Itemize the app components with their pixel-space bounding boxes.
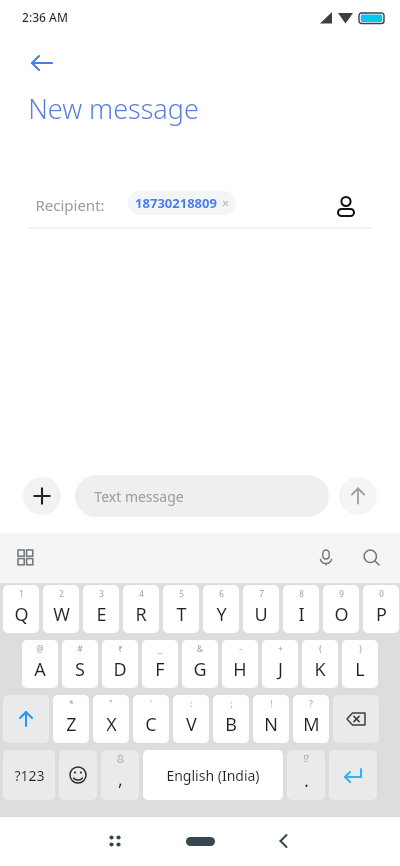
button[interactable]: 1 xyxy=(3,585,39,633)
button[interactable]: Search xyxy=(354,540,390,576)
button[interactable]: ?123 xyxy=(3,750,55,800)
button[interactable]: Backspace xyxy=(333,695,379,743)
staticText: 2:36 AM xyxy=(22,9,68,25)
staticText: 1 xyxy=(19,588,24,599)
button[interactable]: " xyxy=(93,695,129,743)
button[interactable]: : xyxy=(173,695,209,743)
button[interactable]: Send xyxy=(339,477,377,515)
staticText: ; xyxy=(230,698,233,709)
button[interactable]: Menu xyxy=(8,540,44,576)
staticText: E xyxy=(96,602,107,627)
staticText: : xyxy=(190,698,193,709)
button[interactable]: & xyxy=(182,640,218,688)
staticText: 2 xyxy=(59,588,64,599)
staticText: New message xyxy=(28,90,199,127)
staticText: 4 xyxy=(139,588,144,599)
button[interactable]: Home xyxy=(181,822,219,860)
staticText: ? xyxy=(309,698,313,709)
staticText: & xyxy=(197,643,203,654)
button[interactable]: * xyxy=(53,695,89,743)
button[interactable]: ' xyxy=(133,695,169,743)
staticText: * xyxy=(69,698,74,709)
button[interactable]: Text message xyxy=(75,475,329,517)
button[interactable]: 18730218809 xyxy=(128,191,236,215)
button[interactable]: ₹ xyxy=(102,640,138,688)
staticText: 5 xyxy=(179,588,184,599)
button[interactable]: ) xyxy=(342,640,378,688)
button[interactable]: 4 xyxy=(123,585,159,633)
button[interactable]: Back xyxy=(266,822,304,860)
button[interactable]: Shift xyxy=(3,695,49,743)
staticText: 18730218809 xyxy=(135,194,217,212)
button[interactable]: ! xyxy=(253,695,289,743)
button[interactable]: _ xyxy=(142,640,178,688)
staticText: L xyxy=(355,657,365,682)
staticText: # xyxy=(77,643,83,654)
staticText: 3 xyxy=(99,588,104,599)
button[interactable]: Recents xyxy=(96,822,134,860)
staticText: F xyxy=(155,657,165,682)
staticText: Text message xyxy=(94,487,184,506)
staticText: J xyxy=(278,657,283,682)
button[interactable]: 0 xyxy=(363,585,399,633)
button[interactable]: ( xyxy=(302,640,338,688)
button[interactable]: , xyxy=(101,750,139,800)
button[interactable]: - xyxy=(222,640,258,688)
staticText: N xyxy=(264,712,278,737)
staticText: ! xyxy=(270,698,273,709)
staticText: , xyxy=(118,767,123,792)
button[interactable]: 9 xyxy=(323,585,359,633)
staticText: M xyxy=(303,712,320,737)
staticText: Y xyxy=(216,602,227,627)
staticText: P xyxy=(376,602,387,627)
staticText: 8 xyxy=(299,588,304,599)
staticText: C xyxy=(145,712,157,737)
staticText: ?123 xyxy=(14,766,45,785)
staticText: !? xyxy=(303,753,309,764)
staticText: W xyxy=(53,602,70,627)
button[interactable]: 5 xyxy=(163,585,199,633)
button[interactable]: 6 xyxy=(203,585,239,633)
button[interactable]: English (India) xyxy=(143,750,283,800)
staticText: × xyxy=(222,195,229,211)
button[interactable]: 7 xyxy=(243,585,279,633)
staticText: _ xyxy=(158,643,162,654)
staticText: Recipient: xyxy=(35,195,105,215)
button[interactable]: @ xyxy=(22,640,58,688)
staticText: @ xyxy=(36,643,44,654)
button[interactable]: Emoji xyxy=(59,750,97,800)
button[interactable]: # xyxy=(62,640,98,688)
staticText: D xyxy=(113,657,127,682)
staticText: S xyxy=(75,657,85,682)
button[interactable]: 8 xyxy=(283,585,319,633)
staticText: T xyxy=(176,602,187,627)
staticText: 0 xyxy=(379,588,384,599)
button[interactable]: Back xyxy=(22,43,62,83)
button[interactable]: !? xyxy=(287,750,325,800)
button[interactable]: + xyxy=(262,640,298,688)
staticText: H xyxy=(233,657,247,682)
button[interactable]: ; xyxy=(213,695,249,743)
button[interactable]: 2 xyxy=(43,585,79,633)
staticText: O xyxy=(334,602,349,627)
button[interactable]: Voice input xyxy=(308,540,344,576)
button[interactable]: Enter xyxy=(329,750,377,800)
staticText: U xyxy=(254,602,268,627)
staticText: G xyxy=(193,657,207,682)
staticText: 9 xyxy=(339,588,344,599)
button[interactable]: 3 xyxy=(83,585,119,633)
button[interactable]: ? xyxy=(293,695,329,743)
staticText: 6 xyxy=(219,588,224,599)
staticText: K xyxy=(314,657,326,682)
staticText: Q xyxy=(14,602,29,627)
staticText: 7 xyxy=(259,588,264,599)
staticText: I xyxy=(298,602,305,627)
staticText: . xyxy=(304,768,309,793)
button[interactable]: Attach xyxy=(23,477,61,515)
staticText: R xyxy=(135,602,147,627)
staticText: + xyxy=(278,643,283,654)
staticText: A xyxy=(34,657,46,682)
staticText: B xyxy=(225,712,237,737)
button[interactable]: Choose contact xyxy=(327,188,365,226)
staticText: " xyxy=(109,698,113,709)
